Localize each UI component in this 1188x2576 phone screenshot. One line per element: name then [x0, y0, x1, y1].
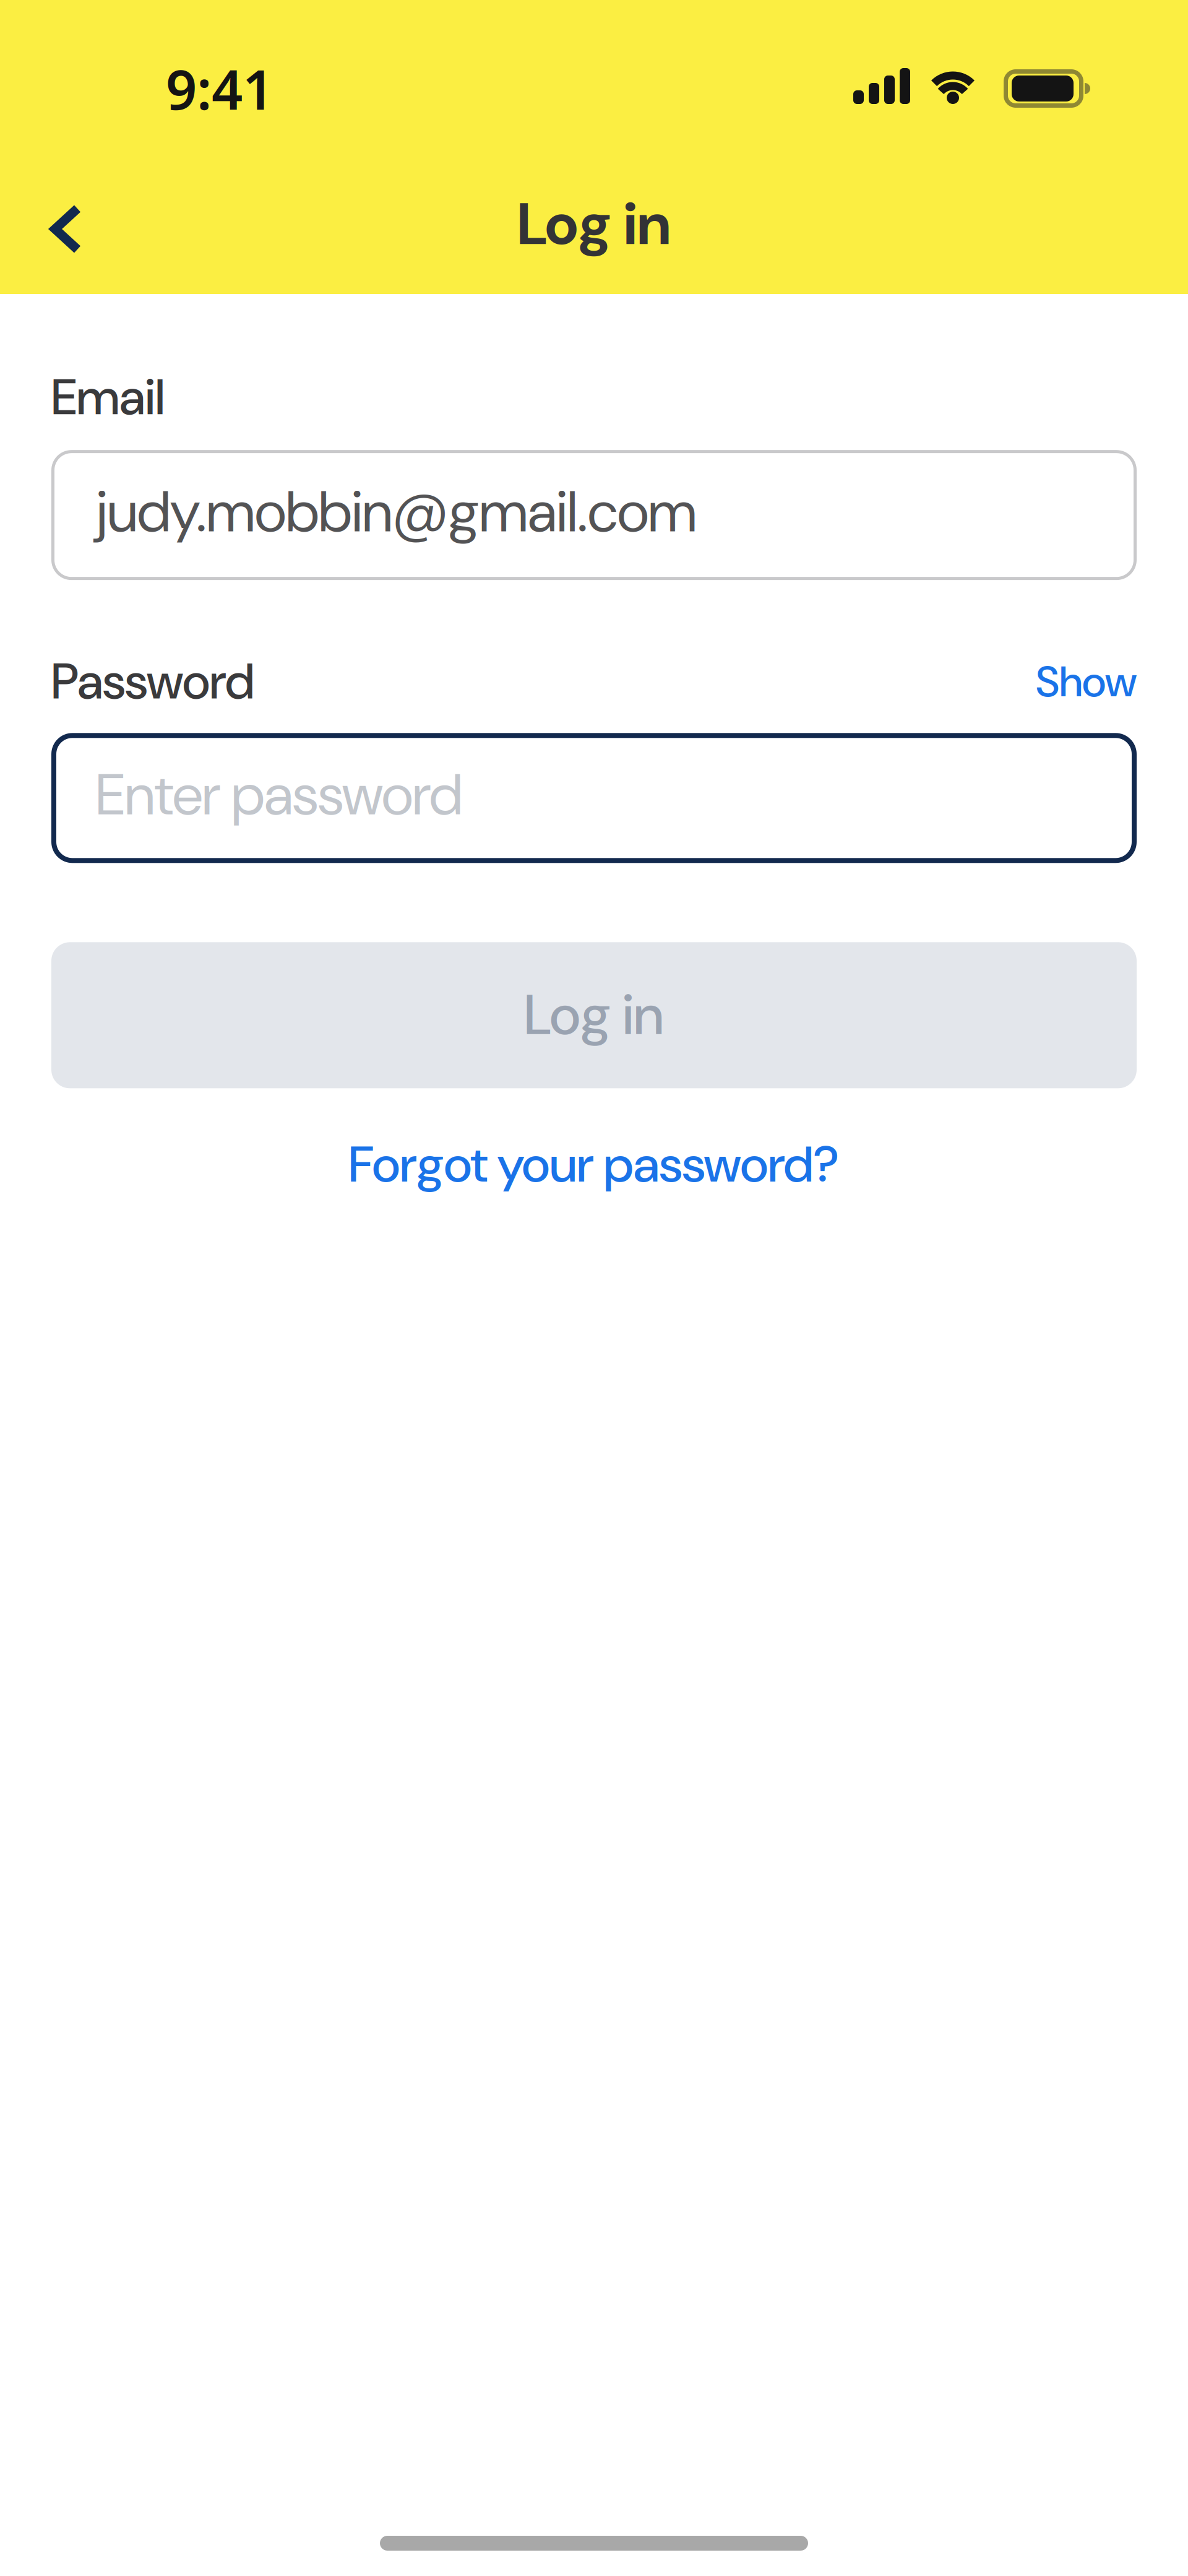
staticText: Email: [51, 365, 165, 430]
staticText: Enter password: [96, 758, 462, 832]
button[interactable]: Show: [1036, 654, 1137, 710]
button[interactable]: [0, 192, 106, 266]
staticText: Show: [1036, 654, 1137, 710]
button[interactable]: Log in: [51, 942, 1137, 1088]
button[interactable]: Forgot your password?: [349, 1132, 839, 1197]
staticText: Forgot your password?: [349, 1132, 839, 1197]
staticText: 9:41: [166, 52, 273, 125]
button[interactable]: judy.mobbin@gmail.com: [51, 450, 1137, 580]
staticText: judy.mobbin@gmail.com: [96, 475, 697, 549]
staticText: Password: [51, 649, 254, 714]
button[interactable]: Enter password: [51, 733, 1137, 863]
staticText: Log in: [524, 979, 664, 1051]
staticText: Log in: [517, 186, 671, 262]
